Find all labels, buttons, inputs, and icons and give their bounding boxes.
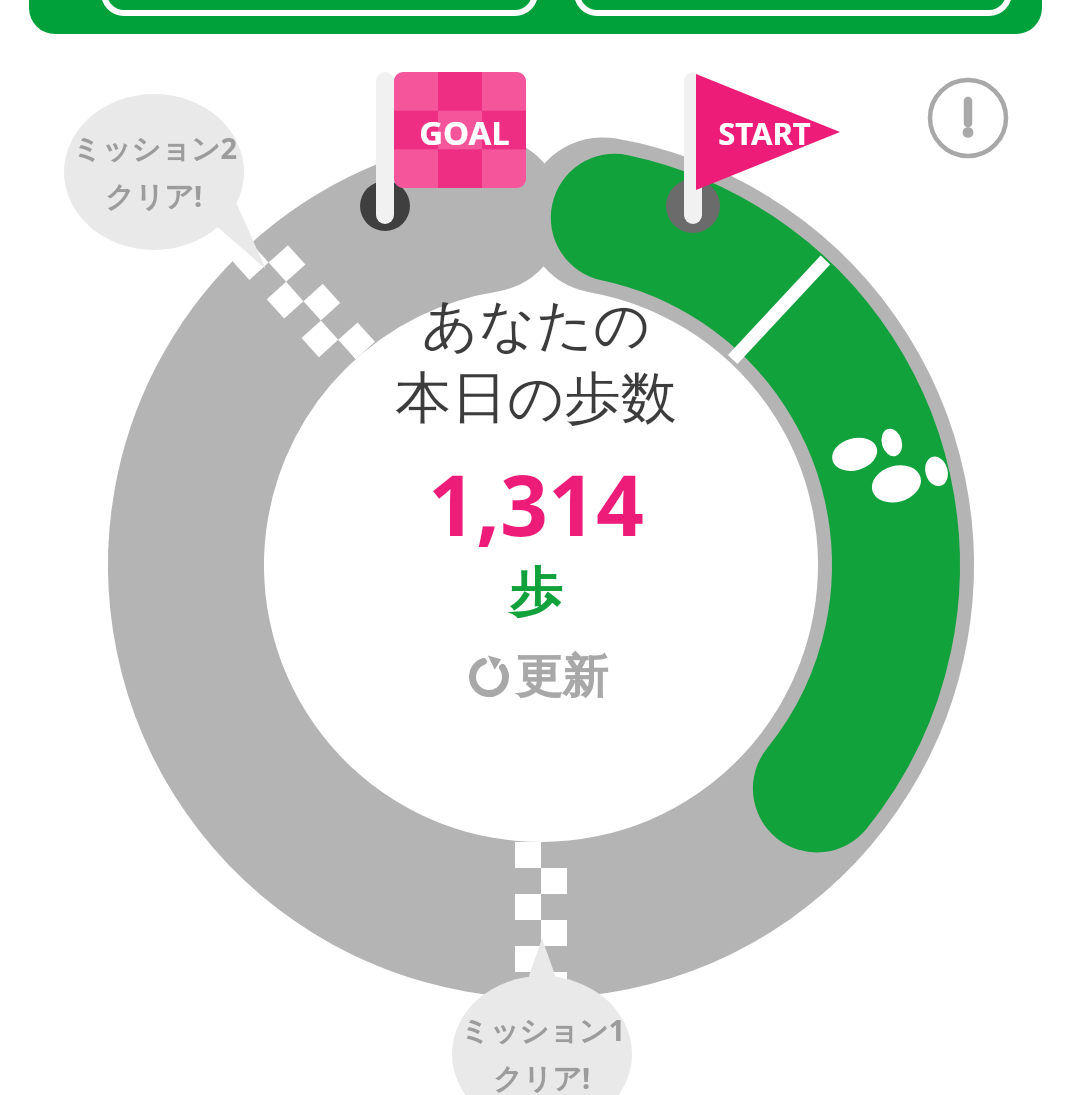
- staticText: 本日の歩数: [395, 363, 677, 434]
- button[interactable]: Information: [926, 76, 1010, 160]
- staticText: START: [718, 112, 811, 154]
- staticText: ミッション1: [460, 1010, 625, 1050]
- button[interactable]: Tab 2: [574, 0, 1012, 16]
- staticText: クリア!: [493, 1058, 591, 1095]
- staticText: GOAL: [419, 110, 510, 155]
- staticText: クリア!: [105, 176, 203, 216]
- staticText: あなたの: [421, 290, 651, 361]
- staticText: ミッション2: [72, 128, 237, 168]
- button[interactable]: Tab 1: [101, 0, 538, 16]
- button[interactable]: 更新: [442, 642, 630, 712]
- staticText: 更新: [516, 648, 608, 706]
- staticText: 歩: [510, 560, 562, 626]
- staticText: 1,314: [428, 446, 645, 560]
